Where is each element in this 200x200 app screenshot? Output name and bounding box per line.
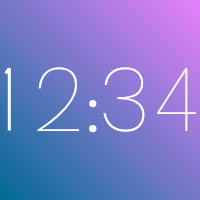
button[interactable]: Watch face showing 12:34 bbox=[0, 0, 200, 200]
staticText: 3 bbox=[99, 38, 151, 163]
staticText: 4 bbox=[156, 38, 198, 163]
staticText: 2 bbox=[33, 38, 84, 163]
